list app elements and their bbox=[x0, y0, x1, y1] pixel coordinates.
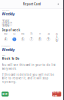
staticText: Week To Do bbox=[2, 57, 20, 60]
staticText: 6 bbox=[22, 37, 24, 41]
staticText: Date range bbox=[2, 19, 10, 21]
staticText: Su bbox=[55, 32, 58, 35]
staticText: Remove bbox=[53, 90, 61, 98]
staticText: Mo bbox=[4, 32, 8, 35]
staticText: 4 bbox=[5, 37, 7, 41]
staticText: Weekly bbox=[2, 11, 15, 16]
staticText: 9 bbox=[47, 37, 49, 41]
button[interactable]: 7/05 – 9/06 bbox=[2, 22, 12, 26]
staticText: 8 bbox=[39, 37, 41, 41]
staticText: If this card is deleted you will not be … bbox=[2, 73, 55, 84]
staticText: 7/05 – 9/06 bbox=[3, 20, 12, 27]
staticText: Report Card bbox=[23, 2, 41, 6]
staticText: 5 bbox=[13, 37, 15, 41]
staticText: You will see this card in your to do lis… bbox=[2, 63, 56, 70]
button[interactable]: Remove bbox=[52, 92, 61, 96]
staticText: Weekly bbox=[2, 47, 15, 52]
staticText: Days of week bbox=[2, 28, 21, 32]
button[interactable]: Save bbox=[2, 92, 9, 96]
staticText: Frequency bbox=[2, 45, 11, 47]
staticText: 10 bbox=[56, 36, 58, 43]
staticText: We bbox=[21, 32, 25, 35]
staticText: Th bbox=[30, 32, 33, 35]
staticText: Save bbox=[2, 92, 8, 96]
staticText: Report type bbox=[2, 9, 10, 11]
staticText: Tu bbox=[13, 32, 16, 35]
staticText: Notes bbox=[2, 55, 6, 56]
button[interactable]: More options bbox=[56, 2, 60, 6]
staticText: 7 bbox=[30, 37, 32, 41]
staticText: Sa bbox=[47, 32, 49, 35]
staticText: Fr bbox=[39, 32, 41, 35]
